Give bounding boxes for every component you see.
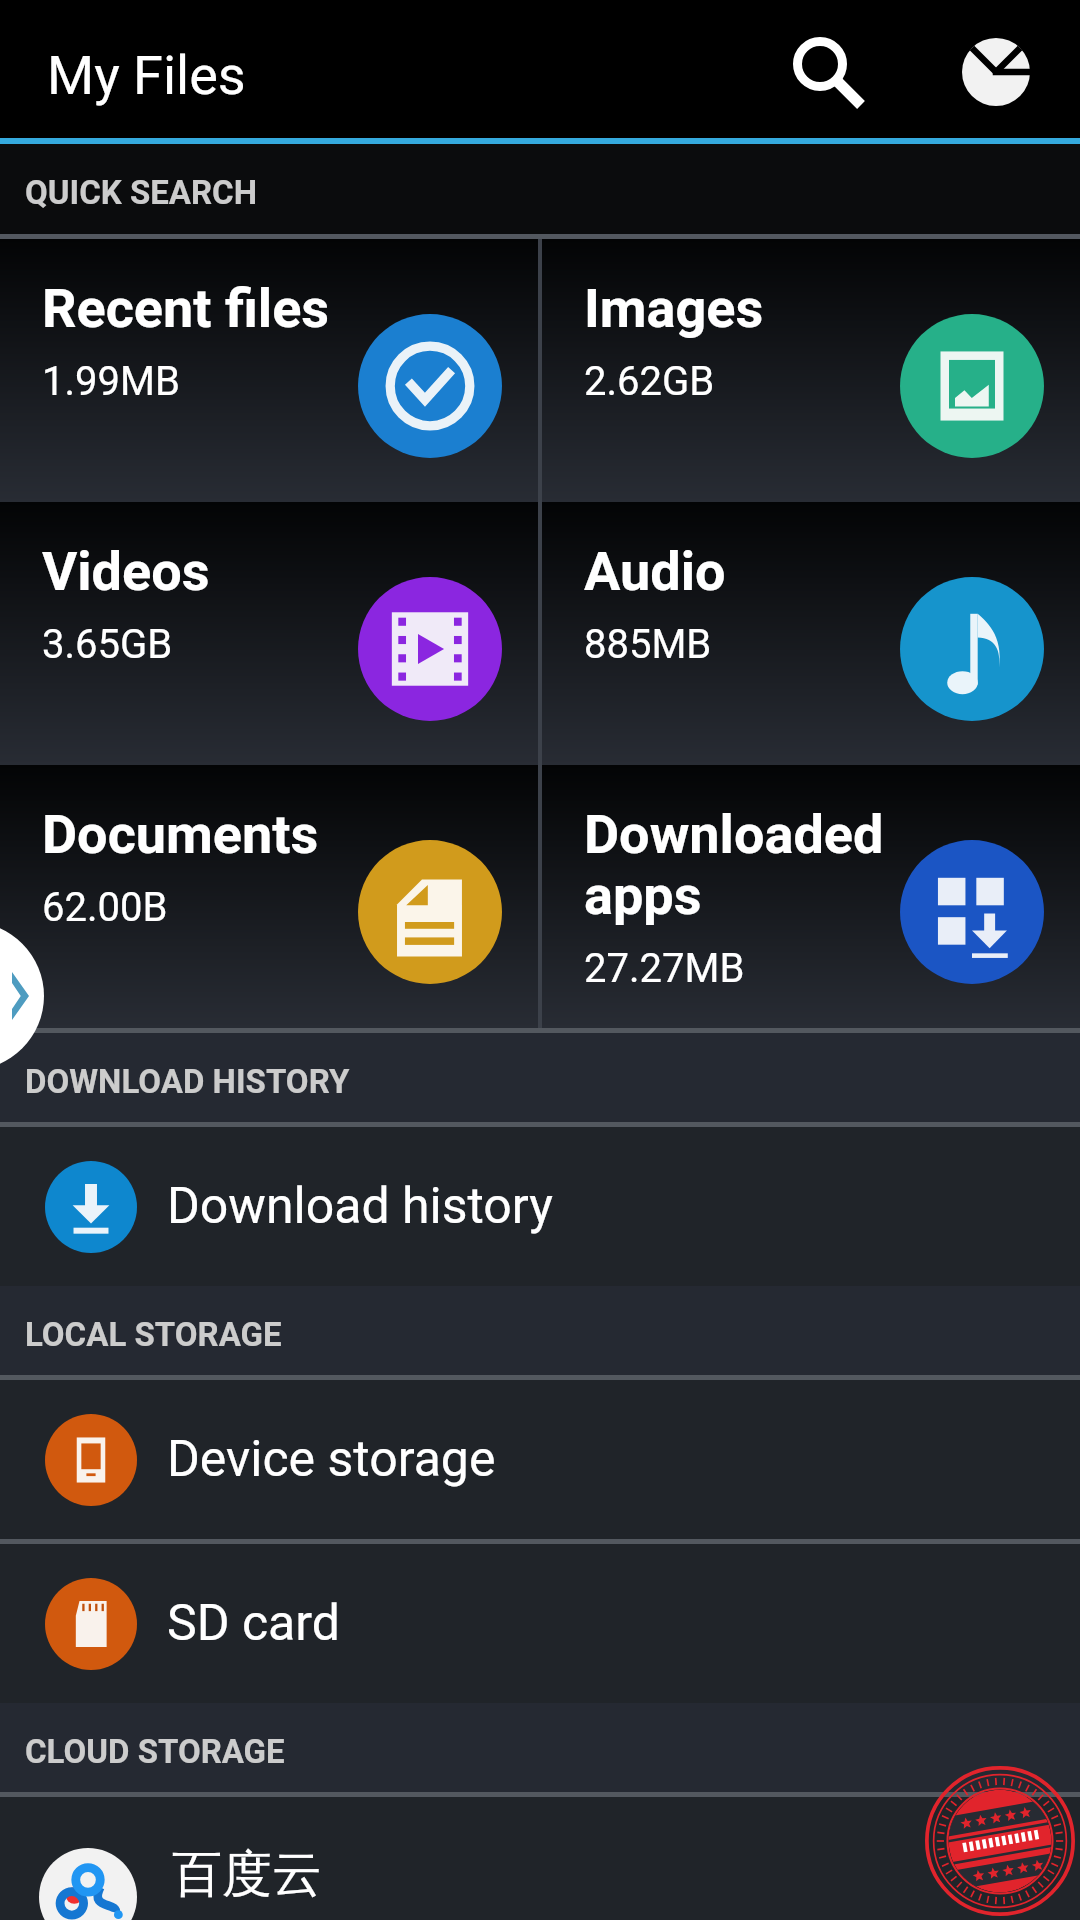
staticText: Device storage [167,1430,496,1489]
button[interactable]: Recent files [0,239,538,502]
button[interactable]: Downloaded apps [542,765,1080,1028]
staticText: CLOUD STORAGE [25,1732,285,1771]
button[interactable]: Search [766,10,874,118]
staticText: 62.00B [42,884,168,931]
button[interactable]: Images [542,239,1080,502]
staticText: DOWNLOAD HISTORY [25,1062,350,1101]
button[interactable]: Documents [0,765,538,1028]
button[interactable]: Storage analysis [942,18,1050,126]
button[interactable]: SD card [0,1544,1080,1703]
staticText: Documents [42,803,319,866]
staticText: Download history [167,1177,553,1236]
button[interactable]: 百度云 [0,1797,1080,1920]
staticText: 27.27MB [584,945,745,992]
button[interactable]: Videos [0,502,538,765]
staticText: Downloaded apps [584,803,1004,927]
staticText: 2.62GB [584,358,715,405]
staticText: 百度云 [172,1843,322,1906]
staticText: Recent files [42,277,330,340]
button[interactable]: Open drawer [0,922,44,1070]
staticText: Images [584,277,764,340]
button[interactable]: Audio [542,502,1080,765]
staticText: QUICK SEARCH [25,173,257,212]
staticText: 885MB [584,621,712,668]
button[interactable]: Device storage [0,1380,1080,1539]
staticText: My Files [47,44,246,107]
button[interactable]: Download history [0,1127,1080,1286]
staticText: SD card [167,1594,340,1653]
staticText: 3.65GB [42,621,173,668]
staticText: 1.99MB [42,358,180,405]
staticText: LOCAL STORAGE [25,1315,282,1354]
staticText: Videos [42,540,210,603]
staticText: Audio [584,540,726,603]
